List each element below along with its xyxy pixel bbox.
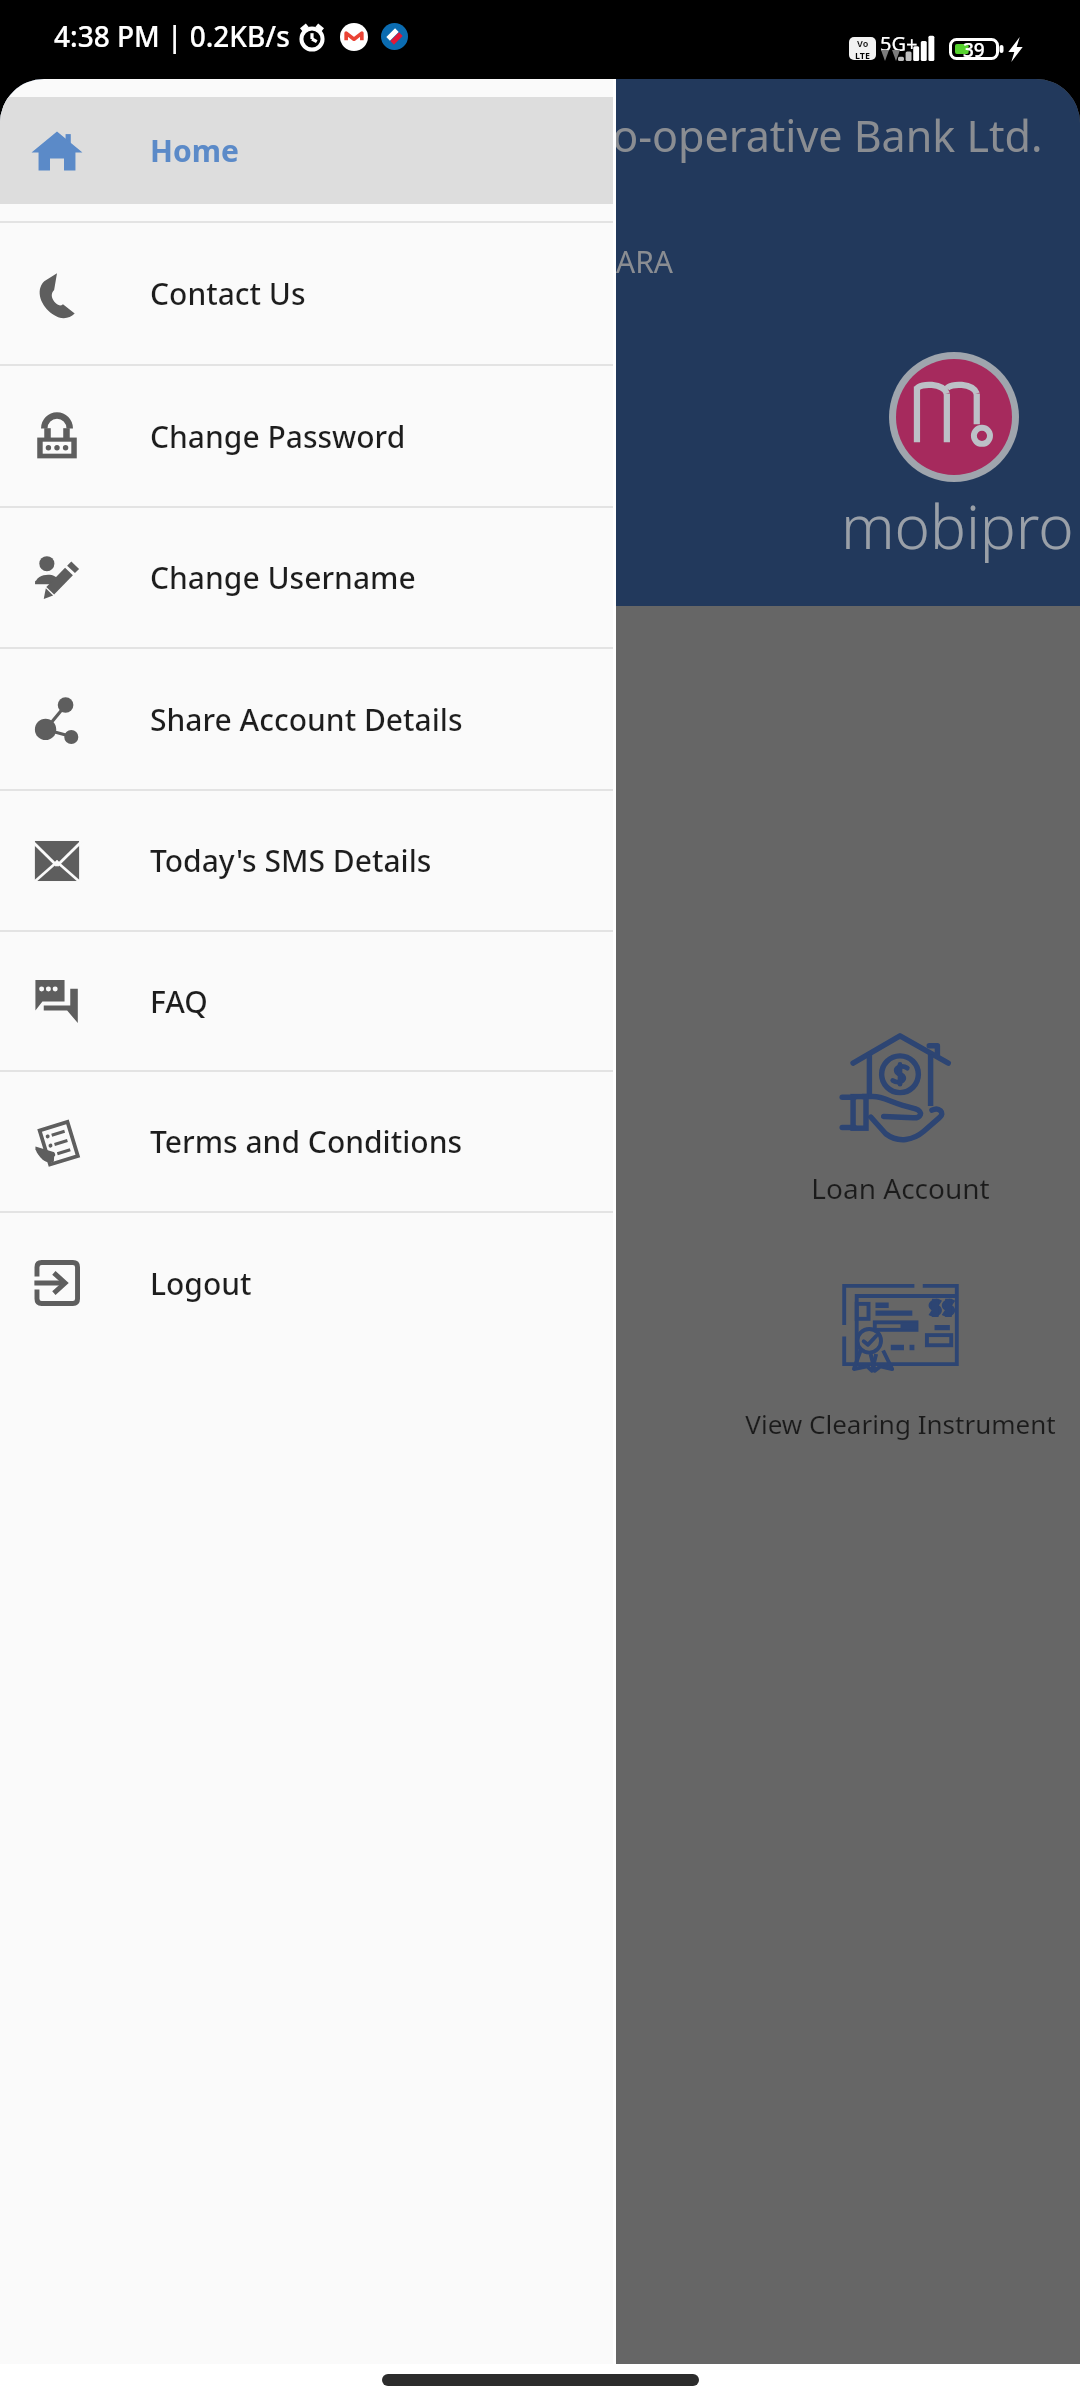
staticText: FAQ bbox=[150, 981, 208, 1022]
button[interactable]: View Clearing Instrument bbox=[660, 1259, 1080, 1479]
staticText: 39 bbox=[963, 37, 985, 59]
button[interactable]: Home bbox=[0, 79, 616, 222]
staticText: View Clearing Instrument bbox=[745, 1406, 1056, 1441]
staticText: 4:38 PM | 0.2KB/s bbox=[54, 17, 290, 55]
staticText: LTE bbox=[855, 49, 871, 60]
button[interactable]: Terms and Conditions bbox=[0, 1071, 616, 1212]
staticText: Today's SMS Details bbox=[150, 840, 432, 881]
button[interactable]: Today's SMS Details bbox=[0, 790, 616, 931]
button[interactable]: Change Password bbox=[0, 365, 616, 507]
staticText: Terms and Conditions bbox=[150, 1121, 463, 1162]
button[interactable]: Change Username bbox=[0, 507, 616, 648]
staticText: ARA bbox=[616, 241, 673, 282]
staticText: Vo bbox=[857, 37, 869, 49]
staticText: 5G+ bbox=[880, 30, 918, 57]
staticText: Home bbox=[150, 130, 239, 171]
staticText: Loan Account bbox=[811, 1169, 990, 1207]
staticText: mobipro bbox=[841, 485, 1074, 567]
staticText: Logout bbox=[150, 1263, 252, 1304]
button[interactable]: Loan Account bbox=[660, 1009, 1080, 1229]
button[interactable]: Share Account Details bbox=[0, 648, 616, 790]
button[interactable]: Logout bbox=[0, 1212, 616, 1354]
staticText: Change Username bbox=[150, 557, 416, 598]
button[interactable]: FAQ bbox=[0, 931, 616, 1071]
staticText: Share Account Details bbox=[150, 699, 463, 740]
staticText: Contact Us bbox=[150, 273, 306, 314]
staticText: Change Password bbox=[150, 416, 406, 457]
staticText: Co-operative Bank Ltd. bbox=[585, 106, 1043, 165]
button[interactable]: Contact Us bbox=[0, 222, 616, 365]
